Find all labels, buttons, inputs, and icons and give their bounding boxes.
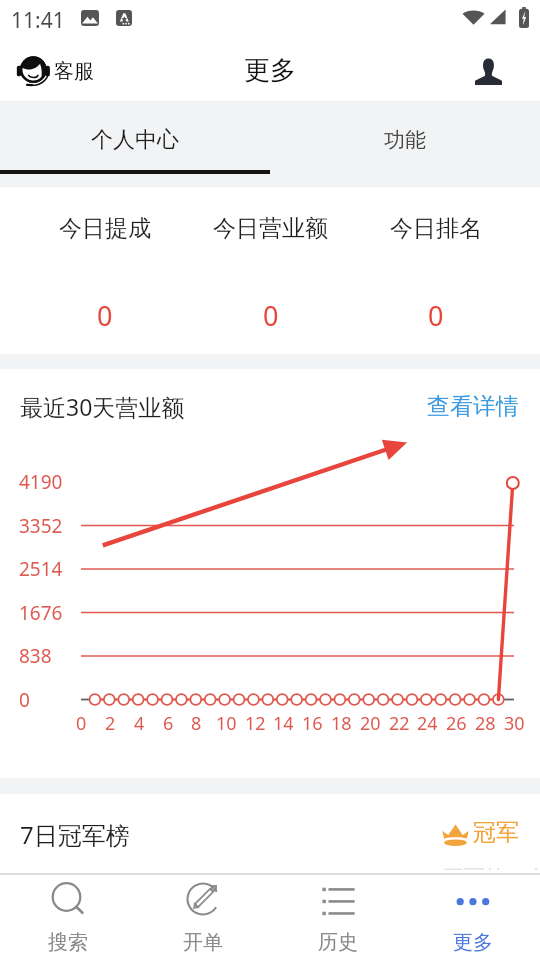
staticText: 更多	[453, 930, 493, 955]
staticText: 14	[273, 711, 294, 736]
staticText: 7日冠军榜	[20, 818, 130, 851]
staticText: 搜索	[48, 930, 88, 955]
staticText: 11:41	[11, 6, 65, 35]
staticText: 28	[475, 711, 496, 736]
staticText: 6	[163, 711, 174, 736]
staticText: 3352	[19, 513, 63, 539]
staticText: 今日排名	[390, 214, 482, 243]
staticText: 更多	[244, 54, 296, 87]
staticText: 2	[105, 711, 116, 736]
staticText: 26	[446, 711, 467, 736]
button[interactable]: 更多	[405, 873, 540, 960]
staticText: 4190	[19, 469, 63, 495]
button[interactable]: 功能	[270, 101, 540, 178]
button[interactable]: 搜索	[0, 873, 135, 960]
staticText: 18	[331, 711, 352, 736]
button[interactable]: 7日冠军榜	[0, 794, 540, 873]
staticText: 客服	[54, 59, 94, 84]
button[interactable]: 历史	[270, 873, 405, 960]
button[interactable]: Account	[464, 47, 512, 95]
staticText: 开单	[183, 930, 223, 955]
staticText: 30	[504, 711, 525, 736]
staticText: 22	[389, 711, 410, 736]
staticText: 0	[263, 297, 279, 334]
button[interactable]: 查看详情	[427, 392, 519, 421]
staticText: 今日提成	[59, 214, 151, 243]
staticText: 今日营业额	[213, 214, 328, 243]
staticText: 1676	[19, 600, 63, 626]
staticText: 24	[417, 711, 438, 736]
staticText: 冠军第一名	[443, 868, 540, 870]
staticText: 10	[216, 711, 237, 736]
staticText: 16	[302, 711, 323, 736]
staticText: 0	[428, 297, 444, 334]
staticText: 12	[245, 711, 266, 736]
button[interactable]: 客服	[17, 54, 94, 88]
staticText: 4	[134, 711, 145, 736]
staticText: 冠军	[473, 818, 519, 847]
staticText: 功能	[384, 127, 426, 153]
button[interactable]: 开单	[135, 873, 270, 960]
staticText: 0	[19, 687, 30, 713]
staticText: 838	[19, 643, 52, 669]
staticText: 2514	[19, 556, 63, 582]
staticText: 最近30天营业额	[20, 391, 185, 422]
staticText: 8	[191, 711, 202, 736]
staticText: 20	[360, 711, 381, 736]
staticText: 0	[76, 711, 87, 736]
staticText: 历史	[318, 930, 358, 955]
staticText: 查看详情	[427, 392, 519, 421]
button[interactable]: 个人中心	[0, 101, 270, 178]
staticText: 个人中心	[91, 126, 179, 154]
staticText: 0	[97, 297, 113, 334]
